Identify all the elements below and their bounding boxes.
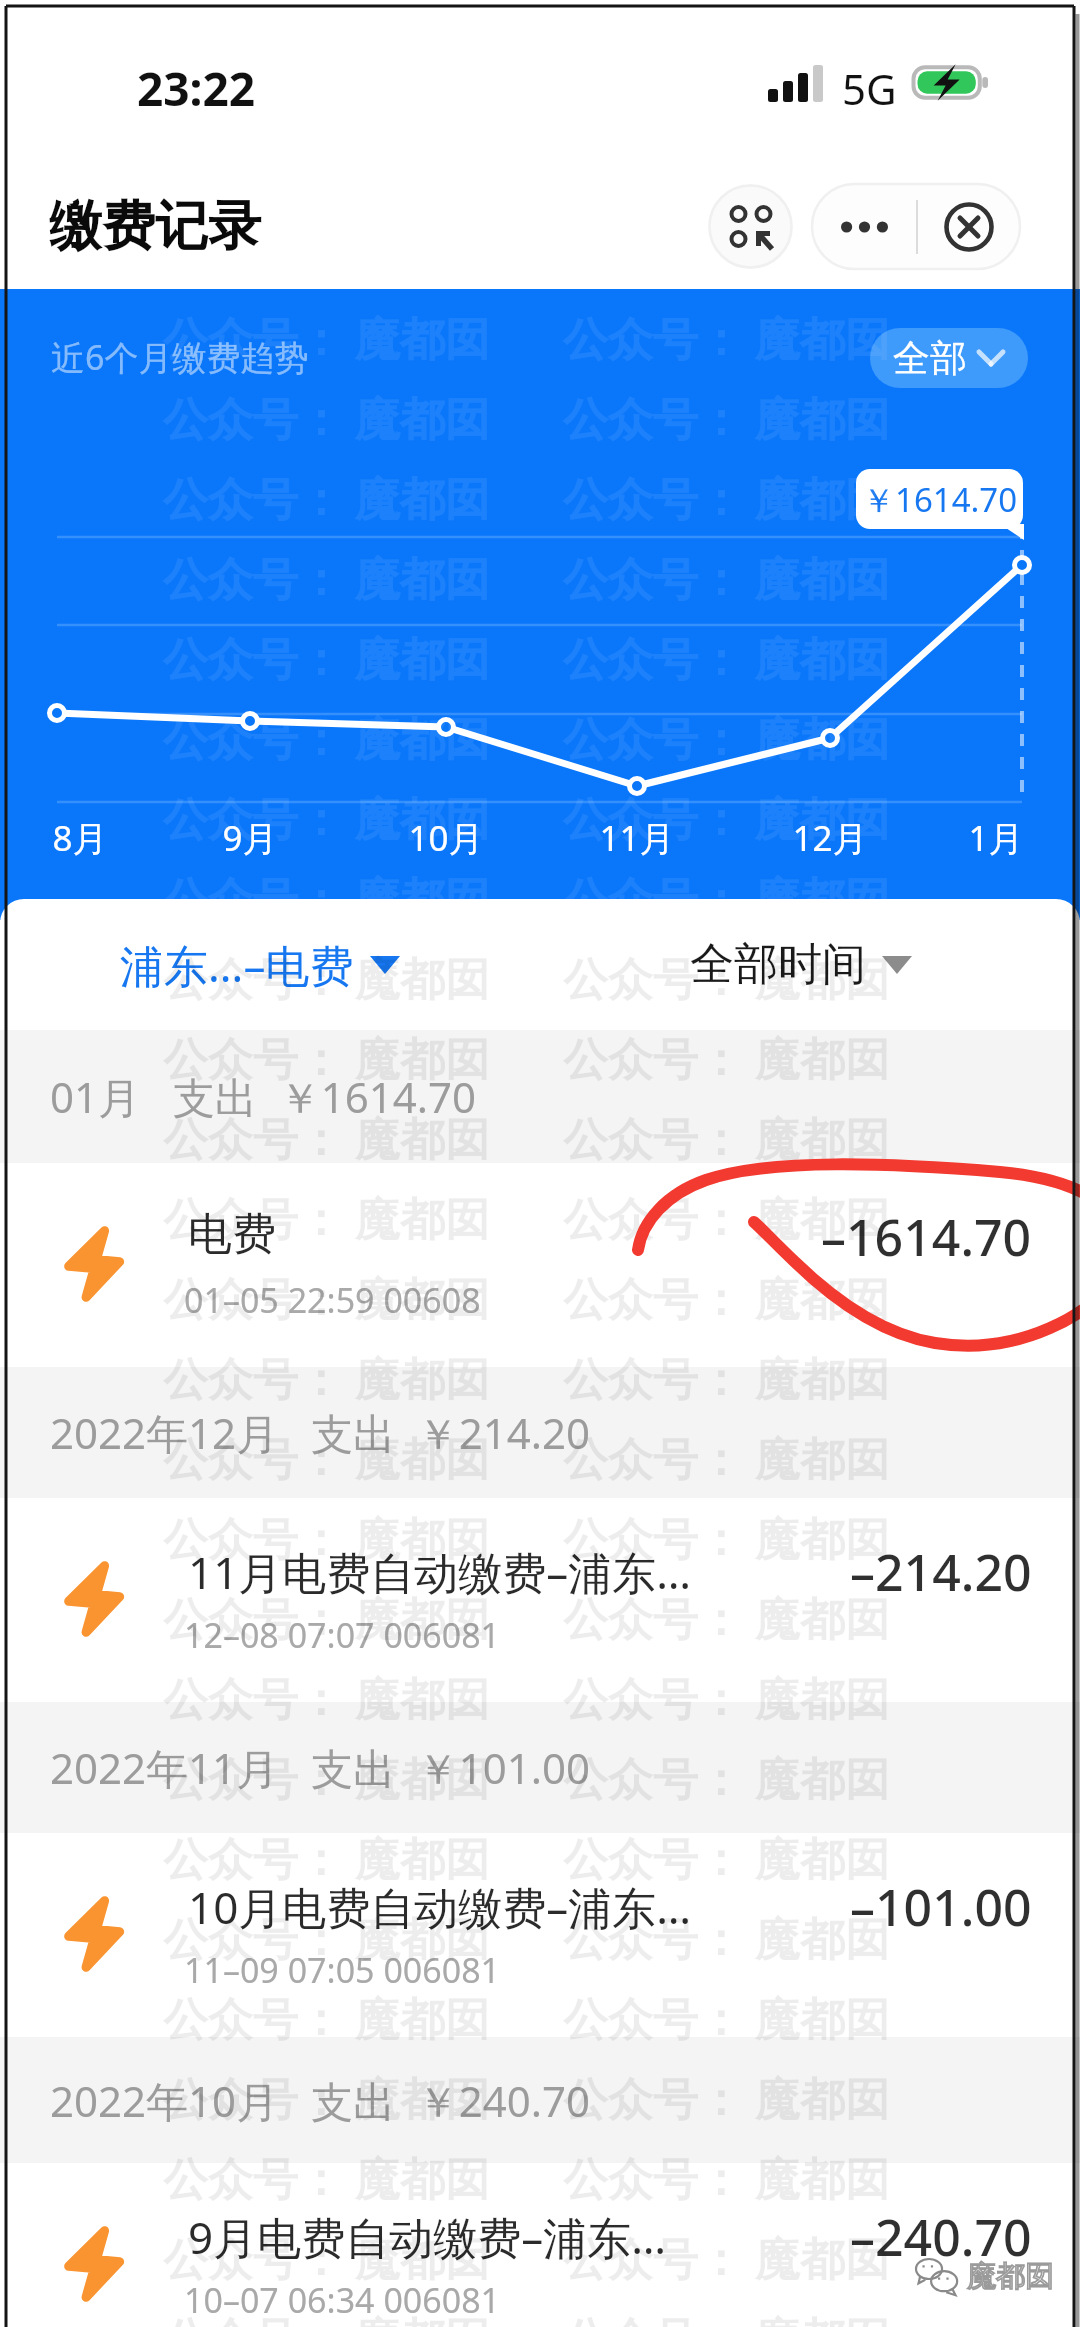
- button[interactable]: 10月电费自动缴费–浦东…: [0, 1833, 1080, 2037]
- staticText: 公众号： 魔都囡: [563, 1027, 890, 1088]
- staticText: 公众号： 魔都囡: [563, 1987, 890, 2048]
- staticText: 5G: [842, 60, 897, 117]
- button[interactable]: Close: [918, 184, 1020, 269]
- staticText: 公众号： 魔都囡: [563, 1507, 890, 1568]
- staticText: 2022年11月 支出 ￥101.00: [50, 1739, 591, 1796]
- staticText: 10月: [408, 814, 484, 862]
- staticText: 公众号： 魔都囡: [563, 1107, 890, 1168]
- staticText: 近6个月缴费趋势: [51, 334, 309, 380]
- staticText: 公众号： 魔都囡: [563, 1187, 890, 1248]
- staticText: 公众号： 魔都囡: [163, 1747, 490, 1808]
- button[interactable]: 浦东...–电费: [120, 899, 400, 1030]
- staticText: 公众号： 魔都囡: [563, 2307, 890, 2327]
- staticText: ￥1614.70: [862, 477, 1018, 522]
- staticText: 公众号： 魔都囡: [563, 467, 890, 528]
- staticText: 1月: [968, 814, 1024, 862]
- staticText: 公众号： 魔都囡: [563, 2227, 890, 2288]
- staticText: 9月: [222, 814, 278, 862]
- staticText: 浦东...–电费: [120, 935, 354, 995]
- button[interactable]: 全部时间: [690, 899, 912, 1030]
- staticText: 全部时间: [690, 937, 866, 992]
- staticText: 缴费记录: [49, 193, 261, 260]
- staticText: 01月 支出 ￥1614.70: [50, 1068, 477, 1125]
- staticText: 公众号： 魔都囡: [563, 1427, 890, 1488]
- staticText: 公众号： 魔都囡: [563, 2067, 890, 2128]
- staticText: 公众号： 魔都囡: [563, 1587, 890, 1648]
- staticText: 公众号： 魔都囡: [563, 1747, 890, 1808]
- staticText: 公众号： 魔都囡: [163, 1987, 490, 2048]
- staticText: 公众号： 魔都囡: [563, 547, 890, 608]
- staticText: 公众号： 魔都囡: [563, 707, 890, 768]
- button[interactable]: 全部: [870, 328, 1028, 388]
- staticText: 公众号： 魔都囡: [563, 2147, 890, 2208]
- staticText: 公众号： 魔都囡: [163, 2227, 490, 2288]
- staticText: 公众号： 魔都囡: [163, 307, 490, 368]
- button[interactable]: 9月电费自动缴费–浦东…: [0, 2163, 1080, 2327]
- staticText: 01–05 22:59 00608: [184, 1277, 481, 1323]
- staticText: 电费: [188, 1207, 276, 1262]
- staticText: 8月: [52, 814, 108, 862]
- staticText: 公众号： 魔都囡: [163, 1907, 490, 1968]
- staticText: 11–09 07:05 006081: [184, 1947, 501, 1993]
- staticText: 9月电费自动缴费–浦东…: [188, 2207, 666, 2267]
- staticText: 公众号： 魔都囡: [563, 387, 890, 448]
- staticText: 公众号： 魔都囡: [163, 1267, 490, 1328]
- staticText: 公众号： 魔都囡: [163, 787, 490, 848]
- button[interactable]: 电费: [0, 1163, 1080, 1367]
- staticText: 公众号： 魔都囡: [163, 1187, 490, 1248]
- staticText: 公众号： 魔都囡: [163, 1427, 490, 1488]
- staticText: 公众号： 魔都囡: [563, 1827, 890, 1888]
- staticText: 10–07 06:34 006081: [184, 2277, 501, 2323]
- staticText: 公众号： 魔都囡: [163, 2067, 490, 2128]
- staticText: –214.20: [850, 1538, 1032, 1606]
- staticText: 公众号： 魔都囡: [563, 307, 890, 368]
- staticText: 11月电费自动缴费–浦东…: [188, 1542, 692, 1602]
- staticText: 2022年12月 支出 ￥214.20: [50, 1404, 591, 1461]
- staticText: 11月: [599, 814, 675, 862]
- staticText: 公众号： 魔都囡: [163, 707, 490, 768]
- staticText: 公众号： 魔都囡: [163, 2307, 490, 2327]
- staticText: 公众号： 魔都囡: [163, 467, 490, 528]
- staticText: 公众号： 魔都囡: [163, 387, 490, 448]
- staticText: 公众号： 魔都囡: [163, 1347, 490, 1408]
- staticText: 公众号： 魔都囡: [563, 787, 890, 848]
- staticText: 12–08 07:07 006081: [184, 1612, 501, 1658]
- staticText: 魔都囡: [967, 2258, 1054, 2295]
- staticText: 公众号： 魔都囡: [563, 1907, 890, 1968]
- staticText: 公众号： 魔都囡: [163, 1827, 490, 1888]
- staticText: 公众号： 魔都囡: [563, 1347, 890, 1408]
- staticText: 23:22: [137, 57, 256, 120]
- staticText: 12月: [792, 814, 868, 862]
- staticText: 公众号： 魔都囡: [563, 1267, 890, 1328]
- staticText: 公众号： 魔都囡: [163, 2147, 490, 2208]
- staticText: 公众号： 魔都囡: [163, 1507, 490, 1568]
- staticText: 公众号： 魔都囡: [163, 1667, 490, 1728]
- staticText: 公众号： 魔都囡: [563, 1667, 890, 1728]
- staticText: 公众号： 魔都囡: [163, 1027, 490, 1088]
- staticText: 2022年10月 支出 ￥240.70: [50, 2072, 591, 2129]
- staticText: 公众号： 魔都囡: [163, 547, 490, 608]
- staticText: 公众号： 魔都囡: [563, 627, 890, 688]
- staticText: 10月电费自动缴费–浦东…: [188, 1877, 692, 1937]
- staticText: 公众号： 魔都囡: [563, 947, 890, 1008]
- button[interactable]: Mini programs: [708, 184, 793, 269]
- staticText: 公众号： 魔都囡: [163, 1107, 490, 1168]
- staticText: 公众号： 魔都囡: [163, 1587, 490, 1648]
- staticText: 全部: [893, 335, 967, 382]
- staticText: 公众号： 魔都囡: [563, 867, 890, 928]
- staticText: 公众号： 魔都囡: [163, 947, 490, 1008]
- staticText: 公众号： 魔都囡: [163, 867, 490, 928]
- button[interactable]: 11月电费自动缴费–浦东…: [0, 1498, 1080, 1702]
- staticText: –240.70: [850, 2203, 1032, 2271]
- staticText: 公众号： 魔都囡: [163, 627, 490, 688]
- staticText: –1614.70: [821, 1203, 1032, 1271]
- staticText: –101.00: [850, 1873, 1032, 1941]
- button[interactable]: More: [812, 184, 916, 269]
